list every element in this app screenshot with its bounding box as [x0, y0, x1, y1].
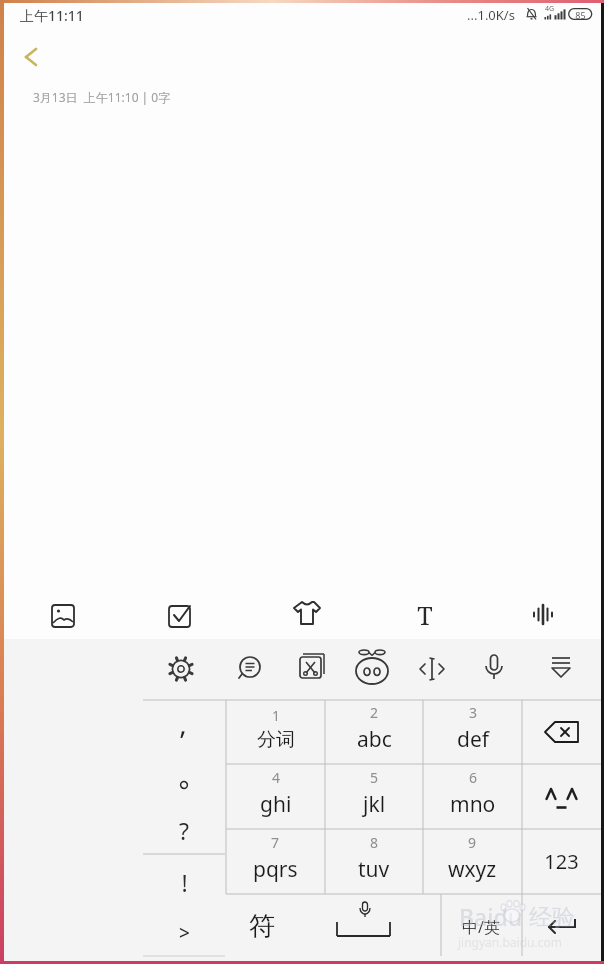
staticText: T — [417, 598, 433, 632]
staticText: ? — [179, 815, 189, 846]
button[interactable]: ? — [124, 808, 244, 852]
button[interactable] — [410, 647, 454, 691]
staticText: wxyz — [448, 855, 497, 884]
staticText: ...1.0K/s — [467, 6, 515, 24]
staticText: 4G — [545, 4, 555, 14]
staticText: pqrs — [253, 855, 298, 884]
staticText: 经验 — [529, 903, 575, 932]
button[interactable]: ! — [124, 860, 244, 904]
button[interactable]: 中/英 — [421, 905, 541, 949]
staticText: 2 — [370, 703, 379, 722]
staticText: def — [457, 725, 489, 754]
button[interactable] — [289, 646, 333, 690]
button[interactable] — [521, 593, 565, 637]
staticText: 中/英 — [462, 916, 500, 938]
staticText: 5 — [370, 768, 379, 787]
button[interactable]: 123 — [501, 839, 604, 883]
button[interactable]: 符 — [202, 904, 322, 948]
button[interactable]: 9 — [423, 829, 522, 894]
staticText: jingyan.baidu.com — [458, 934, 562, 950]
button[interactable] — [348, 645, 396, 693]
staticText: jkl — [363, 790, 386, 819]
button[interactable] — [228, 646, 272, 690]
button[interactable]: T — [365, 593, 485, 637]
staticText: 6 — [469, 768, 478, 787]
staticText: tuv — [358, 855, 390, 884]
staticText: ! — [181, 867, 188, 898]
staticText: Baidu — [459, 901, 523, 932]
button[interactable]: > — [124, 911, 244, 955]
staticText: 分词 — [257, 728, 295, 752]
button[interactable] — [13, 39, 49, 75]
button[interactable]: 3 — [423, 700, 522, 764]
button[interactable]: 4 — [226, 764, 325, 829]
button[interactable] — [472, 646, 516, 690]
button[interactable] — [159, 647, 203, 691]
staticText: 85 — [575, 9, 586, 21]
button[interactable] — [533, 704, 589, 760]
staticText: 8 — [370, 833, 379, 852]
button[interactable] — [285, 591, 329, 635]
button[interactable]: 5 — [325, 764, 423, 829]
staticText: 符 — [249, 910, 275, 943]
staticText: 4 — [272, 768, 281, 787]
staticText: > — [179, 920, 190, 946]
button[interactable]: 7 — [226, 829, 325, 894]
staticText: 3 — [469, 703, 478, 722]
button[interactable] — [41, 594, 85, 638]
button[interactable] — [310, 896, 440, 958]
staticText: abc — [357, 725, 392, 754]
staticText: 上午11:11 — [20, 6, 84, 25]
button[interactable] — [539, 776, 583, 820]
staticText: 9 — [468, 833, 477, 852]
button[interactable] — [158, 594, 202, 638]
staticText: , — [179, 704, 187, 742]
staticText: 1 — [272, 706, 281, 725]
staticText: 7 — [271, 833, 280, 852]
button[interactable] — [539, 646, 583, 690]
staticText: 3月13日 上午11:10 | 0字 — [33, 89, 171, 105]
button[interactable]: 2 — [325, 700, 423, 764]
staticText: 123 — [544, 848, 579, 875]
button[interactable]: 8 — [325, 829, 423, 894]
button[interactable]: 1 — [226, 700, 325, 764]
button[interactable] — [522, 896, 601, 958]
staticText: mno — [450, 790, 496, 819]
button[interactable] — [158, 765, 210, 809]
button[interactable]: , — [123, 701, 243, 745]
button[interactable]: 6 — [423, 764, 522, 829]
staticText: ghi — [260, 790, 292, 819]
